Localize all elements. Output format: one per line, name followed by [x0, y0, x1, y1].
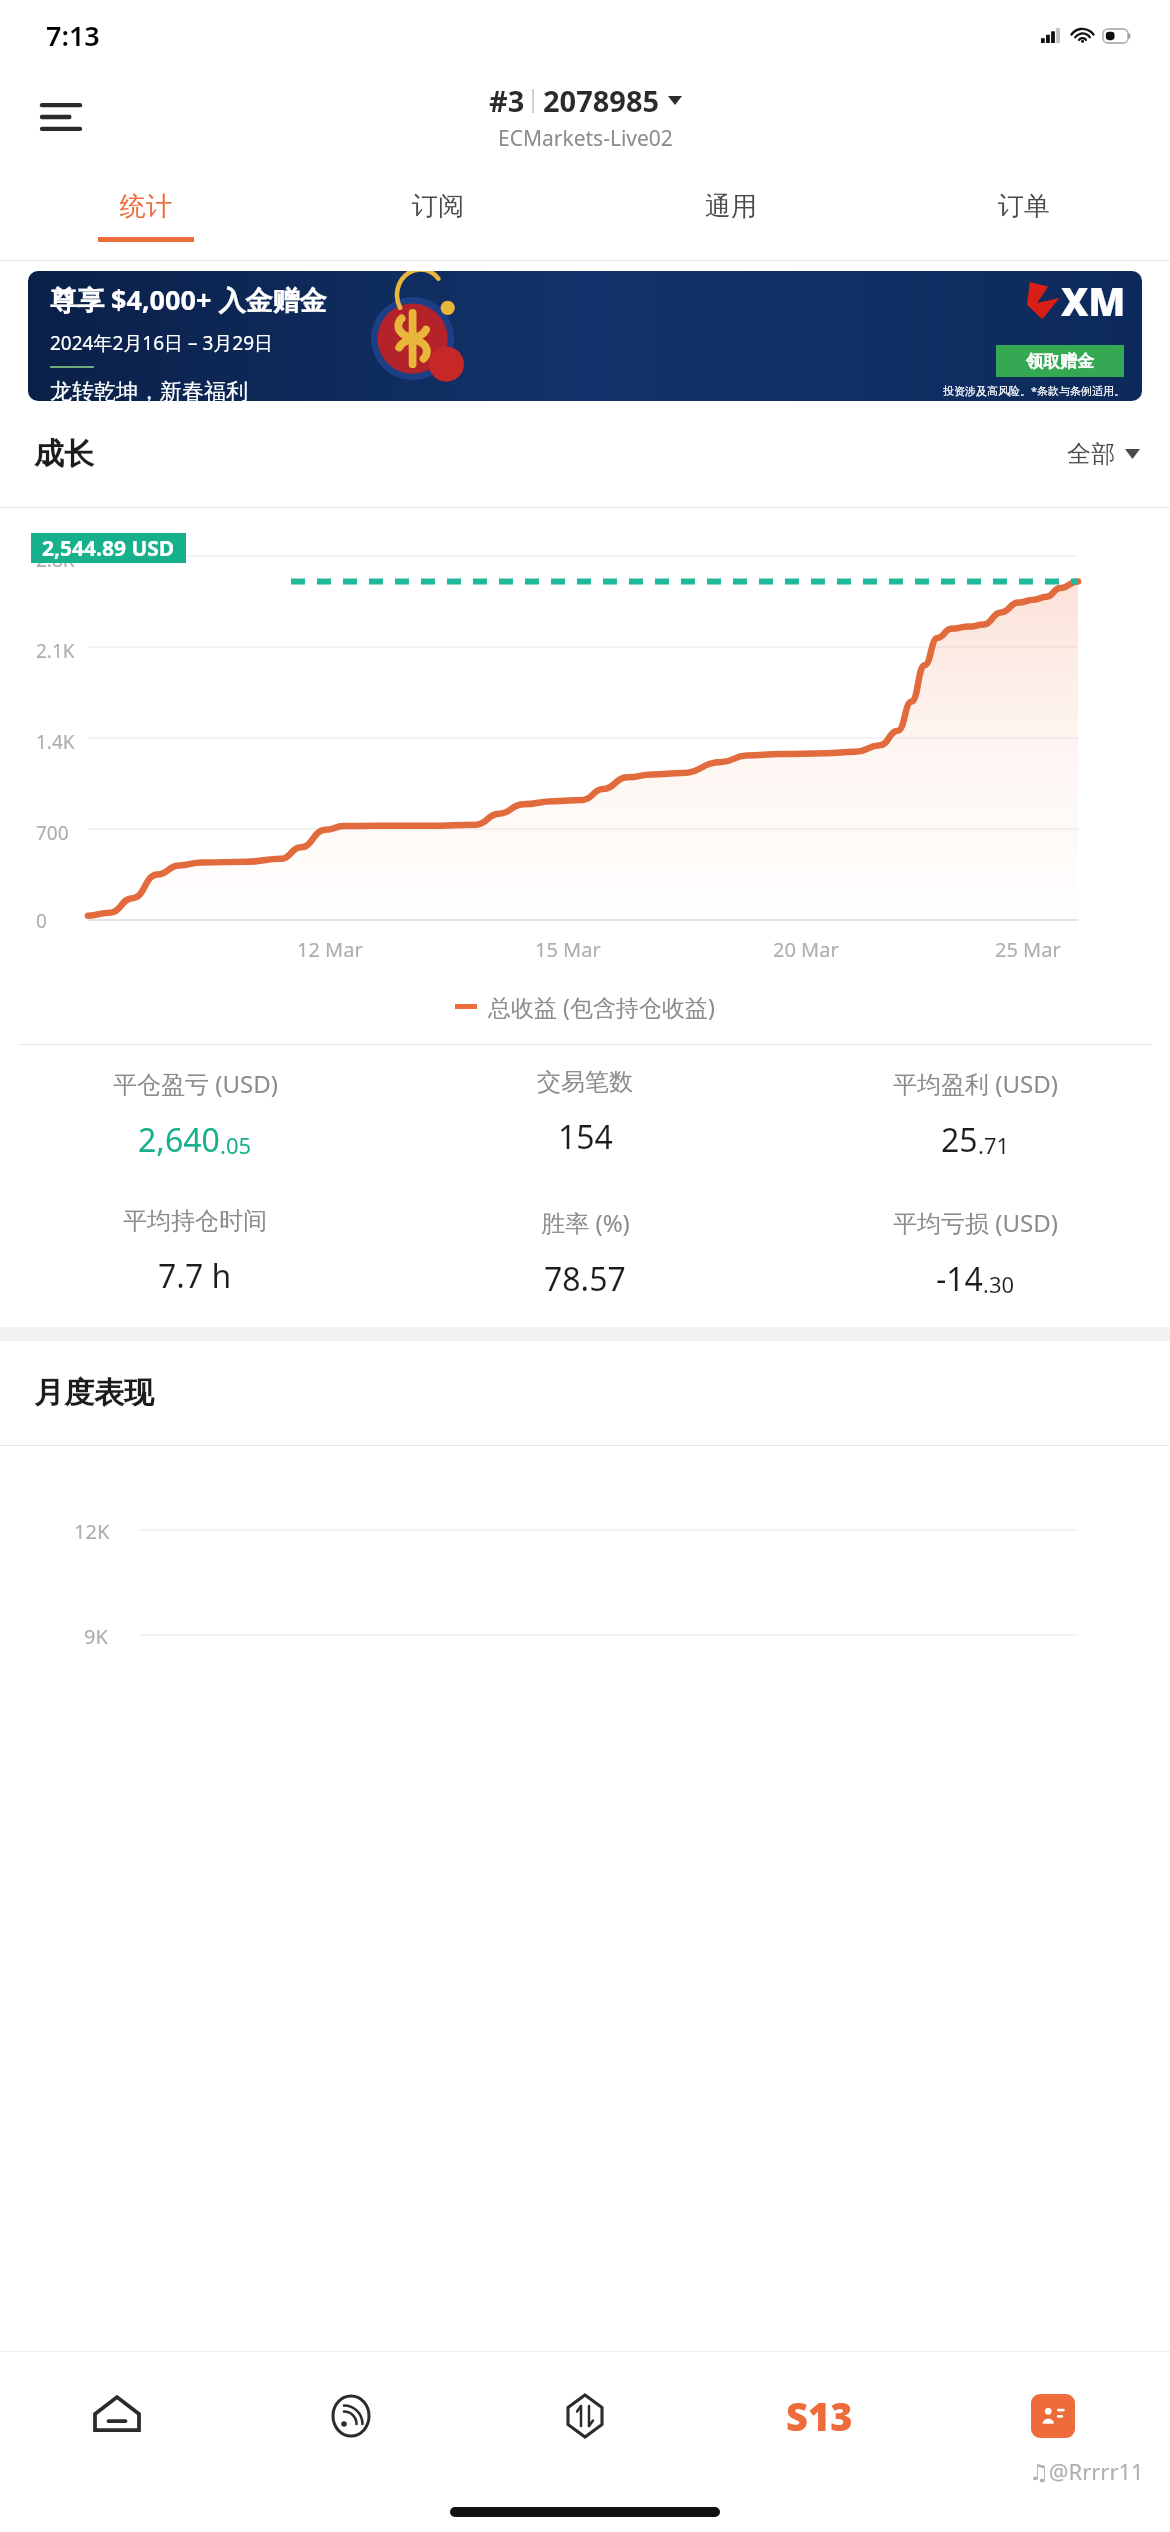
staticText: 胜率 (%): [541, 1206, 630, 1239]
button[interactable]: Signals: [234, 2352, 468, 2480]
staticText: XM: [1061, 275, 1126, 327]
button[interactable]: 订阅: [292, 172, 584, 260]
button[interactable]: Trade: [468, 2352, 702, 2480]
button[interactable]: 领取赠金: [996, 345, 1124, 377]
staticText: 尊享 $4,000+ 入金赠金: [50, 281, 327, 318]
staticText: 交易笔数: [537, 1067, 633, 1097]
staticText: #3: [489, 81, 525, 120]
staticText: 成长: [34, 435, 94, 473]
button[interactable]: Home: [0, 2352, 234, 2480]
staticText: 月度表现: [34, 1374, 154, 1412]
button[interactable]: 统计: [0, 172, 292, 260]
staticText: 统计: [120, 190, 172, 223]
button[interactable]: 全部: [1067, 439, 1140, 469]
staticText: 全部: [1067, 439, 1115, 469]
staticText: ♫@Rrrrr11: [1029, 2456, 1144, 2486]
staticText: 9K: [84, 1623, 108, 1650]
staticText: 平均盈利 (USD): [893, 1067, 1058, 1100]
staticText: .05: [220, 1130, 252, 1160]
staticText: 总收益 (包含持仓收益): [488, 991, 715, 1022]
staticText: 12K: [74, 1518, 110, 1545]
staticText: 15 Mar: [535, 936, 601, 963]
staticText: ECMarkets-Live02: [498, 124, 673, 153]
staticText: 2.8K: [36, 547, 75, 573]
staticText: 通用: [705, 190, 757, 223]
staticText: 7:13: [46, 17, 100, 54]
staticText: 订阅: [412, 190, 464, 223]
staticText: S13: [786, 2390, 853, 2442]
staticText: 12 Mar: [297, 936, 363, 963]
staticText: 领取赠金: [1026, 351, 1094, 372]
button[interactable]: 通用: [584, 172, 877, 260]
button[interactable]: S13: [702, 2352, 936, 2480]
button[interactable]: #3: [489, 81, 682, 153]
staticText: 25 Mar: [995, 936, 1061, 963]
staticText: 平均亏损 (USD): [893, 1206, 1058, 1239]
staticText: 平均持仓时间: [123, 1206, 267, 1236]
staticText: -14: [936, 1257, 983, 1301]
button[interactable]: 订单: [877, 172, 1170, 260]
staticText: .30: [983, 1269, 1015, 1299]
staticText: 订单: [998, 190, 1050, 223]
button[interactable]: Profile: [936, 2352, 1170, 2480]
staticText: 700: [36, 820, 69, 846]
staticText: 0: [36, 908, 47, 934]
staticText: 25: [941, 1118, 978, 1162]
button[interactable]: 尊享 $4,000+ 入金赠金: [28, 271, 1142, 401]
staticText: 平仓盈亏 (USD): [113, 1067, 278, 1100]
staticText: 2.1K: [36, 638, 75, 664]
staticText: 1.4K: [36, 729, 75, 755]
button[interactable]: Menu: [32, 88, 90, 146]
staticText: 2078985: [543, 81, 660, 120]
staticText: 投资涉及高风险。*条款与条例适用。: [943, 383, 1126, 398]
staticText: 龙转乾坤，新春福利: [50, 378, 248, 401]
staticText: 7.7 h: [158, 1254, 232, 1298]
staticText: 154: [558, 1115, 613, 1159]
staticText: 2024年2月16日 – 3月29日: [50, 330, 274, 356]
staticText: 20 Mar: [773, 936, 839, 963]
staticText: 78.57: [544, 1257, 626, 1301]
staticText: 2,640: [138, 1118, 220, 1162]
staticText: 2,544.89 USD: [42, 534, 175, 563]
staticText: .71: [978, 1130, 1010, 1160]
